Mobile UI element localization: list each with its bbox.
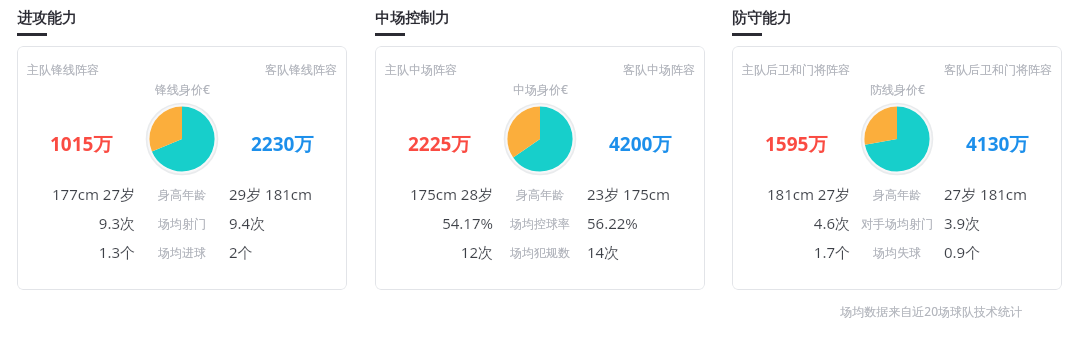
staticText: 175cm 28岁 <box>409 184 493 204</box>
button[interactable]: 主队锋线阵容 <box>17 46 347 290</box>
button[interactable]: 12次 <box>383 242 697 262</box>
staticText: 181cm 27岁 <box>766 184 850 204</box>
staticText: 56.22% <box>587 213 638 233</box>
staticText: 12次 <box>460 242 493 262</box>
button[interactable]: 主队中场阵容 <box>375 46 705 290</box>
button[interactable]: 1.3个 <box>25 242 339 262</box>
staticText: 29岁 181cm <box>229 184 313 204</box>
staticText: 中场身价€ <box>513 81 568 97</box>
button[interactable]: 进攻能力 <box>17 9 77 28</box>
staticText: 2230万 <box>251 131 314 157</box>
button[interactable]: 181cm 27岁 <box>740 184 1054 204</box>
staticText: 1015万 <box>50 131 113 157</box>
button[interactable]: 175cm 28岁 <box>383 184 697 204</box>
button[interactable]: 177cm 27岁 <box>25 184 339 204</box>
button[interactable]: 54.17% <box>383 213 697 233</box>
staticText: 27岁 181cm <box>944 184 1028 204</box>
staticText: 对手场均射门 <box>861 216 933 231</box>
staticText: 场均犯规数 <box>510 245 570 260</box>
button[interactable]: 1.7个 <box>740 242 1054 262</box>
staticText: 主队中场阵容 <box>385 62 457 77</box>
staticText: 23岁 175cm <box>587 184 671 204</box>
staticText: 2225万 <box>408 131 471 157</box>
staticText: 场均数据来自近20场球队技术统计 <box>840 303 1022 319</box>
staticText: 场均进球 <box>158 245 206 260</box>
staticText: 3.9次 <box>944 213 981 233</box>
staticText: 场均控球率 <box>510 216 570 231</box>
staticText: 锋线身价€ <box>155 81 210 97</box>
staticText: 4.6次 <box>813 213 850 233</box>
staticText: 4200万 <box>609 131 672 157</box>
staticText: 客队中场阵容 <box>623 62 695 77</box>
button[interactable]: 4.6次 <box>740 213 1054 233</box>
staticText: 场均射门 <box>158 216 206 231</box>
staticText: 54.17% <box>442 213 493 233</box>
staticText: 0.9个 <box>944 242 981 262</box>
staticText: 9.4次 <box>229 213 266 233</box>
staticText: 9.3次 <box>98 213 135 233</box>
staticText: 防线身价€ <box>870 81 925 97</box>
button[interactable]: 9.3次 <box>25 213 339 233</box>
button[interactable]: 中场控制力 <box>375 9 450 28</box>
staticText: 客队后卫和门将阵容 <box>944 62 1052 77</box>
button[interactable]: 主队后卫和门将阵容 <box>732 46 1062 290</box>
staticText: 177cm 27岁 <box>51 184 135 204</box>
staticText: 身高年龄 <box>158 187 206 202</box>
button[interactable]: 防守能力 <box>732 9 792 28</box>
staticText: 4130万 <box>966 131 1029 157</box>
staticText: 1.7个 <box>813 242 850 262</box>
staticText: 1595万 <box>765 131 828 157</box>
staticText: 场均失球 <box>873 245 921 260</box>
staticText: 1.3个 <box>98 242 135 262</box>
staticText: 身高年龄 <box>516 187 564 202</box>
staticText: 2个 <box>229 242 253 262</box>
staticText: 主队后卫和门将阵容 <box>742 62 850 77</box>
staticText: 身高年龄 <box>873 187 921 202</box>
staticText: 14次 <box>587 242 620 262</box>
staticText: 客队锋线阵容 <box>265 62 337 77</box>
staticText: 主队锋线阵容 <box>27 62 99 77</box>
